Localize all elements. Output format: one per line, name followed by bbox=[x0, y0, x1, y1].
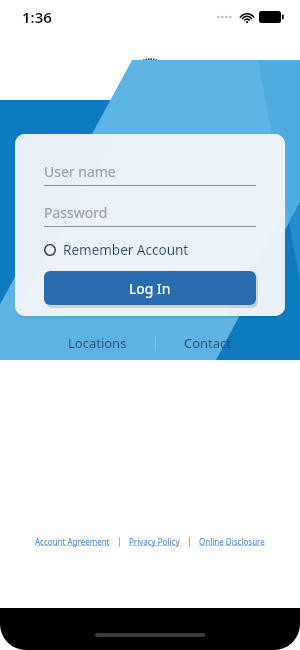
staticText: Remember Account bbox=[63, 241, 189, 259]
button[interactable]: Password bbox=[44, 203, 256, 227]
button[interactable]: Contact bbox=[174, 330, 242, 356]
button[interactable]: Remember Account bbox=[44, 241, 189, 259]
button[interactable]: Log In bbox=[44, 271, 256, 305]
button[interactable]: Privacy Policy bbox=[129, 533, 180, 550]
staticText: Contact bbox=[184, 334, 232, 352]
staticText: Locations bbox=[68, 334, 127, 352]
staticText: Account Agreement bbox=[35, 536, 110, 547]
button[interactable]: Locations bbox=[58, 330, 137, 356]
button[interactable]: Account Agreement bbox=[35, 533, 110, 550]
staticText: 1:36 bbox=[22, 7, 52, 27]
button[interactable]: User name bbox=[44, 162, 256, 186]
staticText: Log In bbox=[129, 279, 171, 298]
staticText: Online Disclosure bbox=[199, 536, 265, 547]
button[interactable]: Online Disclosure bbox=[199, 533, 265, 550]
staticText: User name bbox=[44, 162, 116, 181]
staticText: Privacy Policy bbox=[129, 536, 180, 547]
staticText: Password bbox=[44, 203, 108, 222]
